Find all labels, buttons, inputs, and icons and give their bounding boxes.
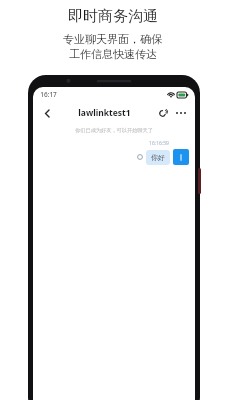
staticText: 即时商务沟通 (68, 7, 158, 26)
staticText: 你们已成为好友，可以开始聊天了 (75, 127, 153, 134)
staticText: lawlinktest1 (78, 107, 131, 119)
button[interactable]: Back (39, 105, 55, 121)
staticText: 专业聊天界面，确保 (63, 32, 162, 46)
button[interactable]: Avatar (173, 149, 189, 165)
staticText: 16:16:59 (149, 140, 169, 147)
staticText: 16:17 (40, 90, 57, 99)
staticText: 工作信息快速传达 (69, 47, 157, 61)
button[interactable]: 你好 (146, 150, 170, 165)
staticText: 你好 (151, 153, 165, 162)
button[interactable]: Call (155, 105, 171, 121)
button[interactable]: More options (173, 105, 189, 121)
